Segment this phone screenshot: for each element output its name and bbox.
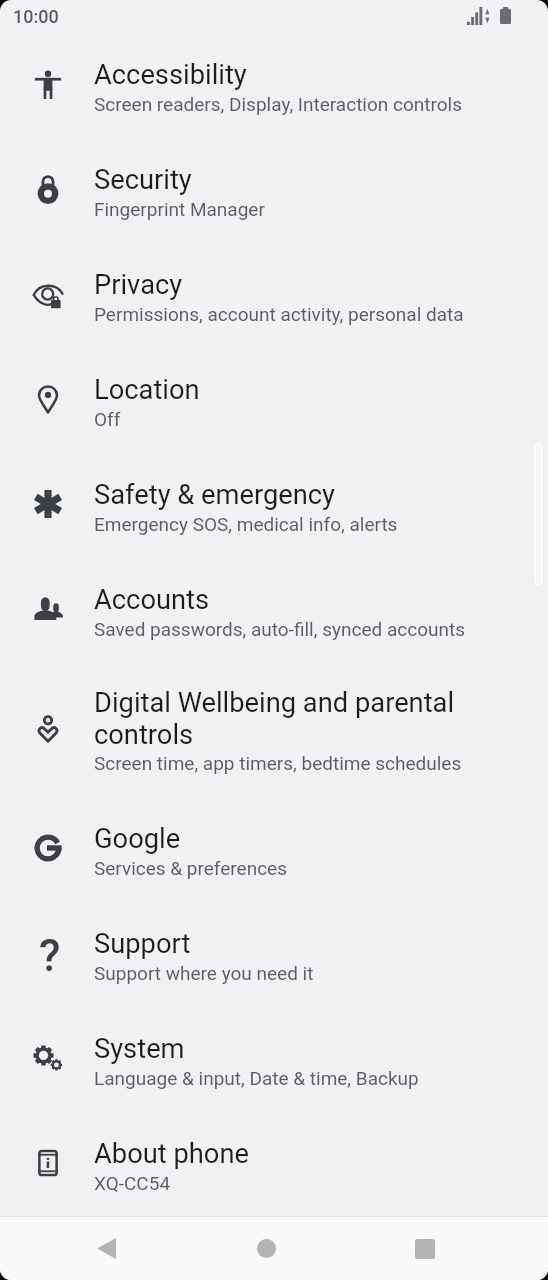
button[interactable]: Safety & emergency [0,460,548,565]
button[interactable]: Back [74,1217,139,1280]
button[interactable]: Accounts [0,565,548,670]
button[interactable]: System [0,1014,548,1119]
staticText: Screen time, app timers, bedtime schedul… [94,752,462,774]
staticText: Services & preferences [94,857,287,879]
button[interactable]: Accessibility [0,40,548,145]
staticText: Digital Wellbeing and parental controls [94,687,470,750]
staticText: Screen readers, Display, Interaction con… [94,93,463,115]
staticText: 10:00 [13,6,59,27]
staticText: About phone [94,1138,249,1170]
button[interactable]: Recents [392,1217,457,1280]
staticText: Language & input, Date & time, Backup [94,1067,419,1089]
staticText: Support [94,928,191,960]
staticText: Safety & emergency [94,479,336,511]
staticText: Privacy [94,269,183,301]
staticText: Security [94,164,192,196]
staticText: Support where you need it [94,962,314,984]
button[interactable]: About phone [0,1119,548,1216]
staticText: ? [39,930,61,982]
button[interactable]: Google [0,804,548,909]
button[interactable]: Privacy [0,250,548,355]
button[interactable]: Location [0,355,548,460]
staticText: Google [94,823,181,855]
staticText: Off [94,408,121,430]
button[interactable]: Home [234,1217,299,1280]
button[interactable]: Security [0,145,548,250]
staticText: Location [94,374,200,406]
button[interactable]: ? [0,909,548,1014]
staticText: Accessibility [94,59,247,91]
staticText: Permissions, account activity, personal … [94,303,464,325]
staticText: Saved passwords, auto-fill, synced accou… [94,618,465,640]
staticText: XQ-CC54 [94,1172,171,1194]
staticText: Fingerprint Manager [94,198,265,220]
staticText: Emergency SOS, medical info, alerts [94,513,398,535]
staticText: Accounts [94,584,210,616]
staticText: System [94,1033,185,1065]
button[interactable]: Digital Wellbeing and parental controls [0,670,548,804]
